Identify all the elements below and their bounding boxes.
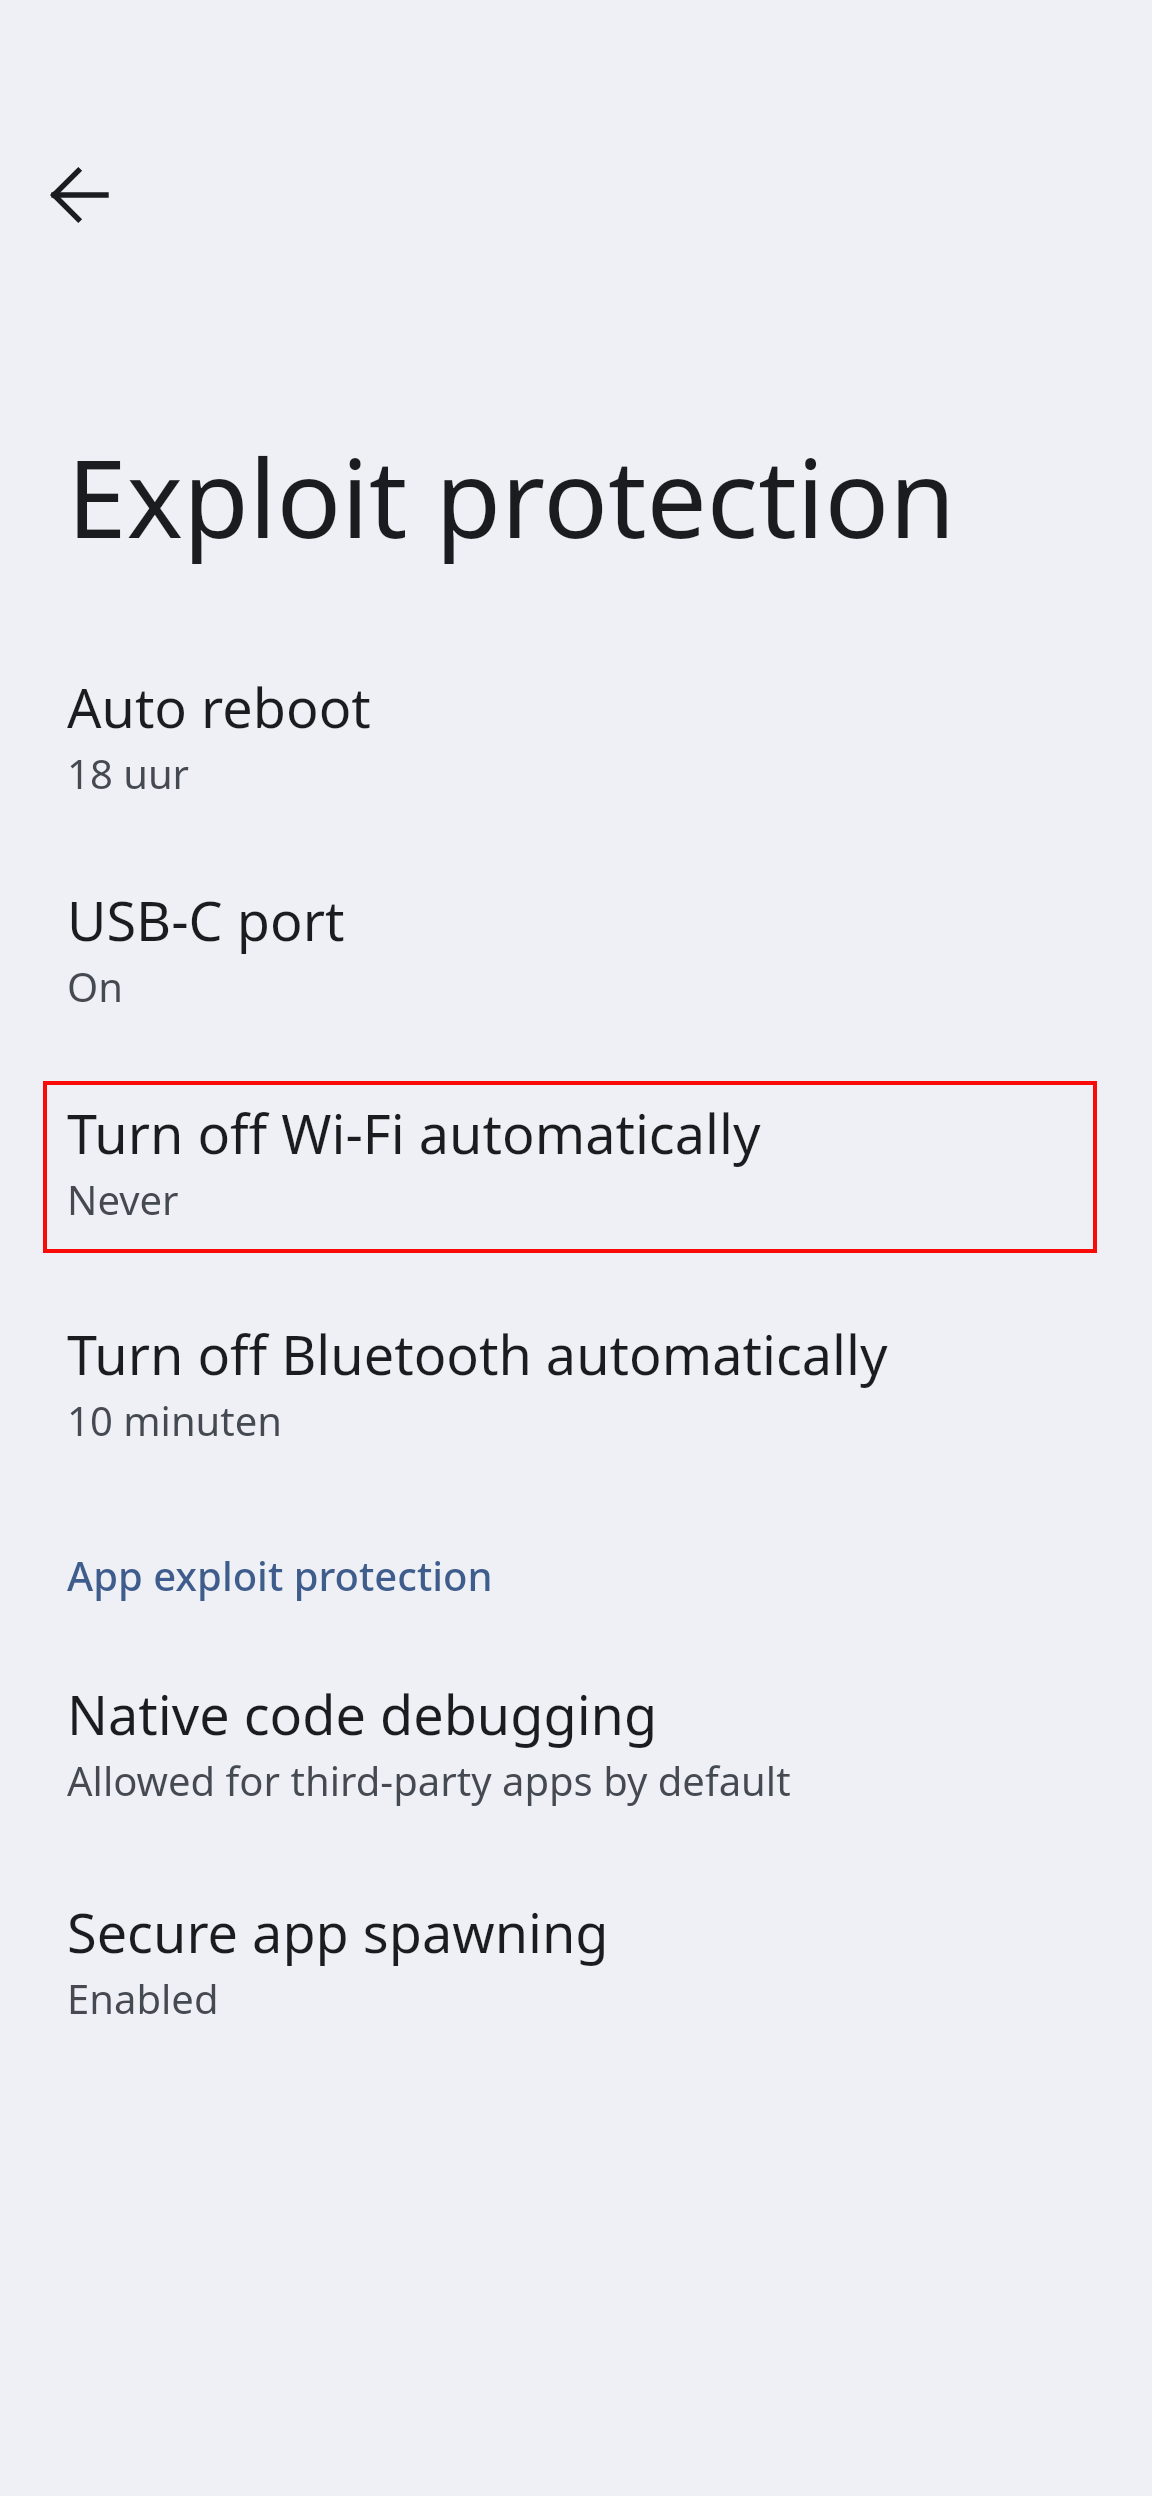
button[interactable]: Back xyxy=(32,147,128,243)
staticText: App exploit protection xyxy=(67,1548,493,1602)
staticText: On xyxy=(67,959,123,1013)
button[interactable]: Auto reboot xyxy=(0,655,1152,827)
staticText: Auto reboot xyxy=(67,670,371,744)
staticText: Turn off Wi-Fi automatically xyxy=(67,1096,761,1170)
button[interactable]: Turn off Bluetooth automatically xyxy=(0,1302,1152,1474)
staticText: 10 minuten xyxy=(67,1393,283,1447)
staticText: USB-C port xyxy=(67,883,345,957)
staticText: Secure app spawning xyxy=(67,1895,609,1969)
staticText: Allowed for third-party apps by default xyxy=(67,1753,791,1807)
button[interactable]: Secure app spawning xyxy=(0,1880,1152,2052)
staticText: 18 uur xyxy=(67,746,190,800)
button[interactable]: USB-C port xyxy=(0,868,1152,1040)
staticText: Exploit protection xyxy=(67,424,956,570)
button[interactable]: Native code debugging xyxy=(0,1662,1152,1834)
button[interactable]: Turn off Wi-Fi automatically xyxy=(43,1081,1097,1253)
staticText: Native code debugging xyxy=(67,1677,658,1751)
staticText: Turn off Bluetooth automatically xyxy=(67,1317,888,1391)
staticText: Enabled xyxy=(67,1971,219,2025)
staticText: Never xyxy=(67,1172,179,1226)
